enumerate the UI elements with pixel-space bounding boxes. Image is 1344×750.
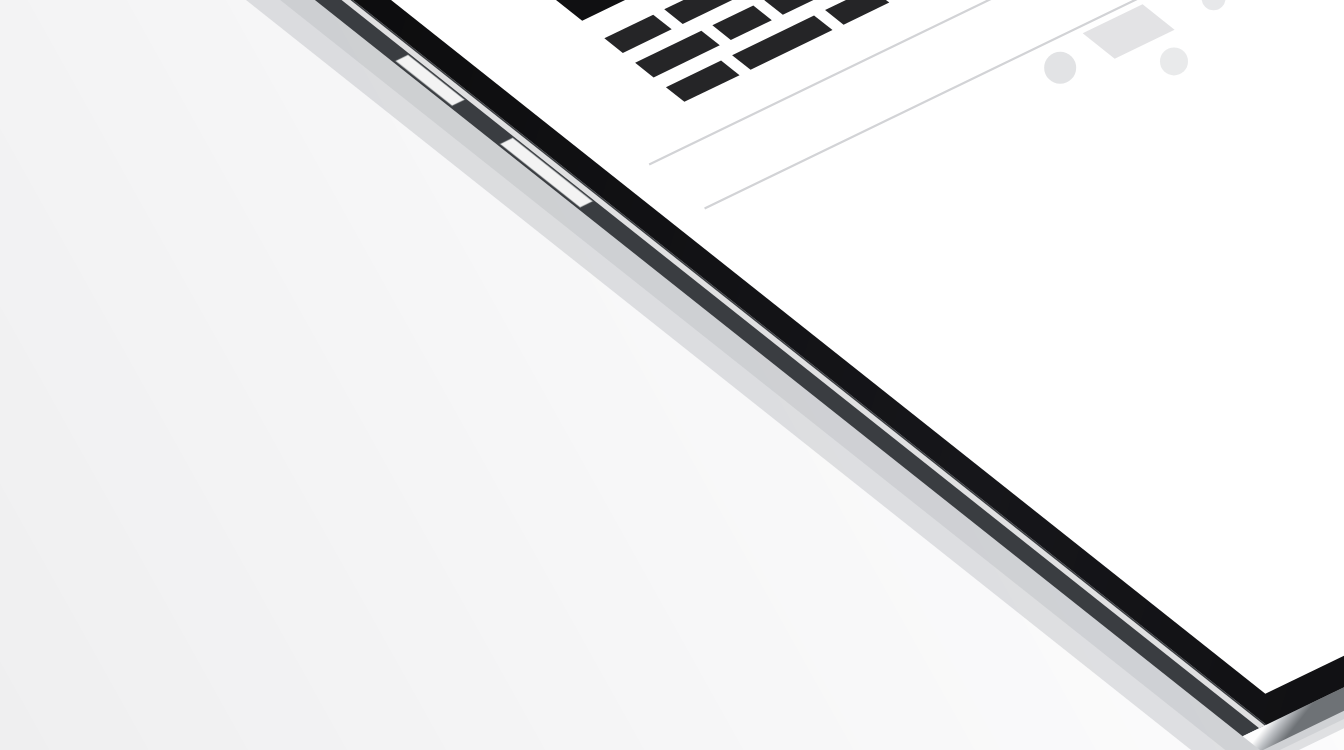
- button[interactable]: [502, 0, 1052, 29]
- button[interactable]: Back: [377, 0, 493, 11]
- button[interactable]: [647, 0, 1263, 210]
- button[interactable]: [590, 0, 1208, 166]
